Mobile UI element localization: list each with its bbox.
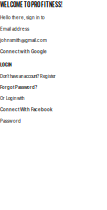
staticText: Connect With Facebook bbox=[0, 107, 52, 112]
staticText: Forgot Password? bbox=[0, 85, 37, 90]
staticText: WELCOME TO PRO FITNESS! bbox=[0, 0, 62, 9]
staticText: LOGIN bbox=[0, 60, 12, 68]
staticText: Connect with Google bbox=[0, 49, 47, 54]
staticText: Password bbox=[0, 118, 21, 124]
staticText: Email address bbox=[0, 26, 29, 32]
staticText: johnsmith@gmail.com bbox=[0, 38, 47, 43]
staticText: Hello there, sign in to bbox=[0, 15, 45, 20]
staticText: Or Login with bbox=[0, 96, 24, 101]
staticText: Don't have an account? Register bbox=[0, 74, 56, 79]
